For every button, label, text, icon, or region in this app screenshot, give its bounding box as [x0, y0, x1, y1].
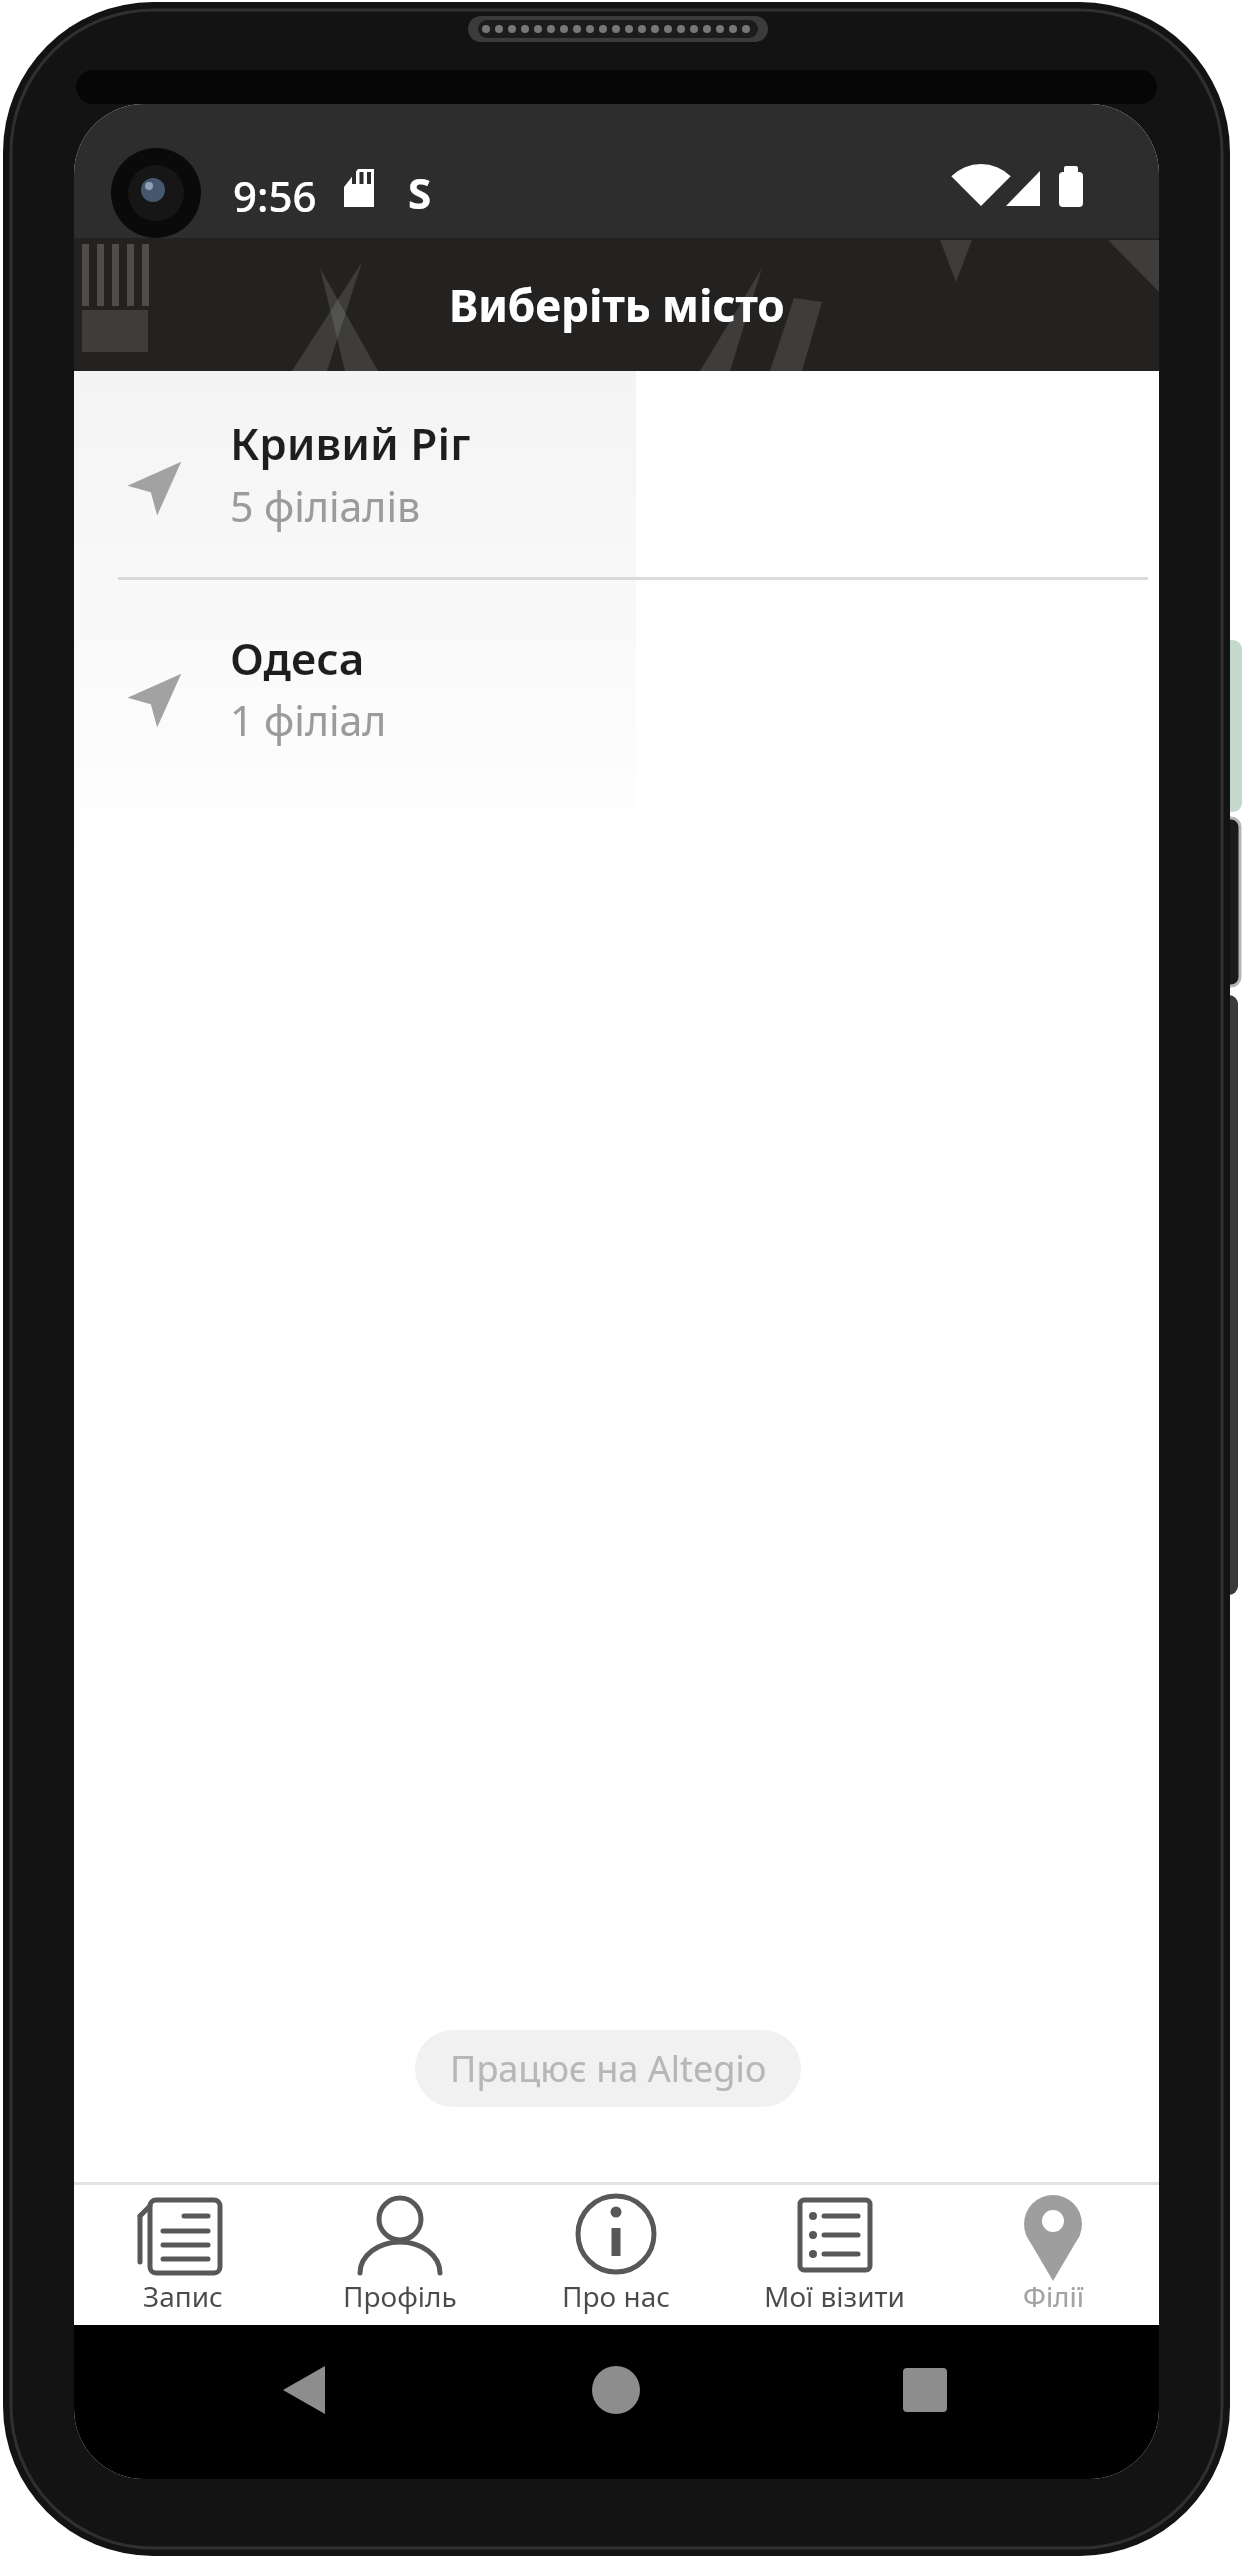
- staticText: Профіль: [343, 2277, 457, 2315]
- button[interactable]: Запис: [78, 2186, 288, 2324]
- staticText: 5 філіалів: [230, 478, 421, 534]
- staticText: 1 філіал: [230, 692, 387, 748]
- staticText: Філії: [1023, 2277, 1084, 2315]
- button[interactable]: Мої візити: [730, 2186, 940, 2324]
- button[interactable]: Профіль: [295, 2186, 505, 2324]
- button[interactable]: Працює на Altegio: [415, 2030, 801, 2107]
- button[interactable]: Одеса: [74, 580, 1159, 870]
- button[interactable]: Філії: [948, 2186, 1158, 2324]
- staticText: 9:56: [233, 167, 317, 219]
- staticText: Виберіть місто: [449, 275, 785, 335]
- button[interactable]: Про нас: [511, 2186, 721, 2324]
- staticText: Про нас: [562, 2277, 671, 2315]
- staticText: S: [408, 164, 432, 214]
- staticText: Мої візити: [764, 2277, 906, 2315]
- staticText: Працює на Altegio: [450, 2044, 767, 2093]
- staticText: Одеса: [230, 628, 365, 688]
- staticText: Кривий Ріг: [230, 413, 471, 473]
- staticText: Запис: [143, 2277, 223, 2315]
- button[interactable]: Кривий Ріг: [74, 371, 1159, 578]
